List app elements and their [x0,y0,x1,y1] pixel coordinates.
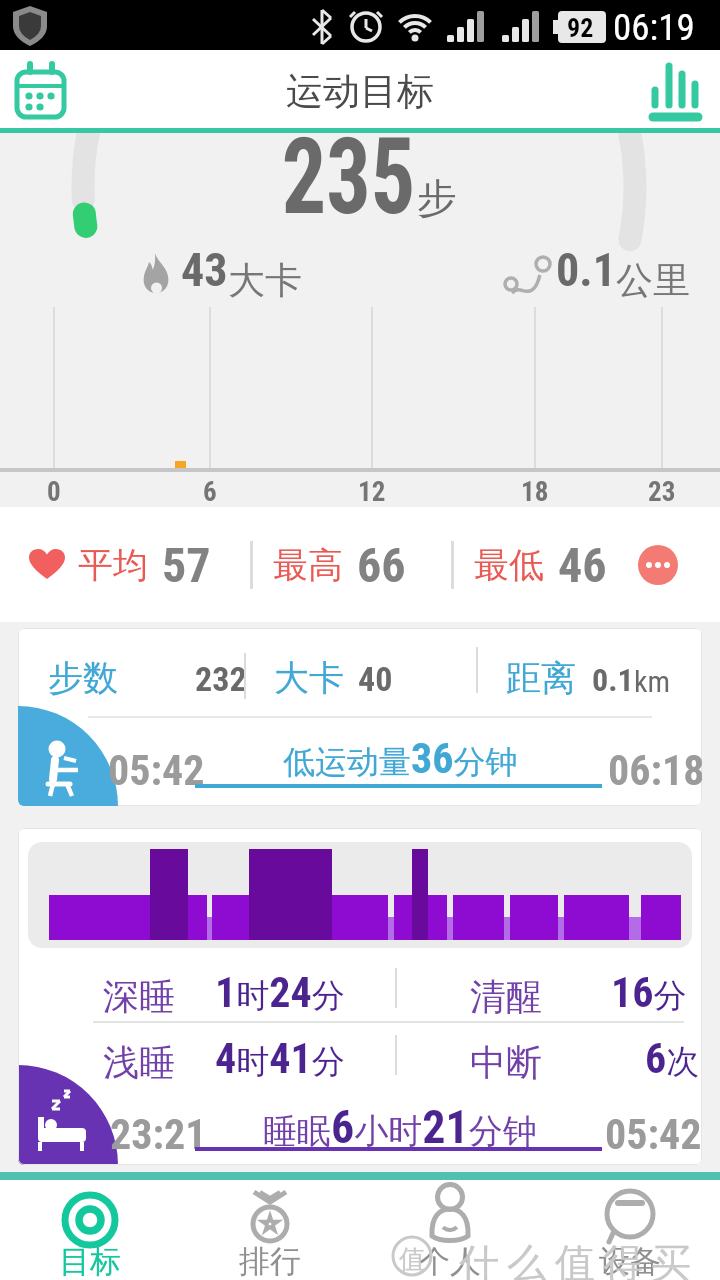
staticText: 4时41分 [215,1034,345,1083]
button[interactable]: 个人 [360,1180,540,1280]
staticText: 0.1 [592,661,634,699]
button[interactable] [18,628,702,806]
staticText: 深睡 [103,974,175,1019]
staticText: 235 [282,115,415,239]
staticText: 46 [558,537,607,593]
staticText: 1时24分 [215,968,345,1017]
staticText: 个人 [419,1242,481,1278]
staticText: 公里 [616,257,690,304]
staticText: 06:19 [613,6,695,49]
staticText: 低运动量36分钟 [283,734,518,783]
staticText: 设备 [599,1242,661,1278]
staticText: 大卡 [228,257,302,304]
button[interactable] [640,50,720,128]
staticText: 6 [203,476,217,508]
staticText: 66 [357,537,406,593]
staticText: 0.1 [556,243,616,297]
button[interactable] [0,50,78,128]
staticText: 值 [399,1243,425,1276]
staticText: 距离 [506,656,576,700]
staticText: 43 [181,243,228,297]
staticText: 中断 [470,1040,542,1085]
staticText: 18 [521,476,549,508]
staticText: 浅睡 [103,1040,175,1085]
staticText: 12 [358,476,386,508]
staticText: 40 [358,659,393,699]
staticText: 05:42 [108,746,205,795]
staticText: 步数 [48,656,118,700]
staticText: 05:42 [605,1110,702,1159]
button[interactable]: 平均 [0,507,720,622]
staticText: km [634,664,671,699]
staticText: 最低 [474,543,544,587]
staticText: 睡眠6小时21分钟 [263,1100,537,1154]
button[interactable]: 深睡 [18,828,702,1165]
staticText: 运动目标 [286,68,434,115]
staticText: 步 [417,173,457,223]
staticText: 57 [162,537,211,593]
staticText: 大卡 [274,656,344,700]
staticText: 最高 [273,543,343,587]
staticText: 23 [648,476,676,508]
staticText: 92 [567,13,594,43]
staticText: 清醒 [470,974,542,1019]
staticText: 16分 [611,968,687,1017]
button[interactable] [638,545,678,585]
button[interactable]: 设备 [540,1180,720,1280]
staticText: 0 [47,476,61,508]
button[interactable]: 排行 [180,1180,360,1280]
staticText: 排行 [239,1242,301,1278]
staticText: 23:21 [110,1110,207,1159]
staticText: 平均 [78,543,148,587]
staticText: 什么值得买 [455,1238,695,1280]
staticText: 目标 [59,1242,121,1278]
staticText: 232 [195,659,247,699]
button[interactable]: 目标 [0,1180,180,1280]
staticText: 06:18 [608,746,702,795]
staticText: 6次 [645,1034,700,1083]
